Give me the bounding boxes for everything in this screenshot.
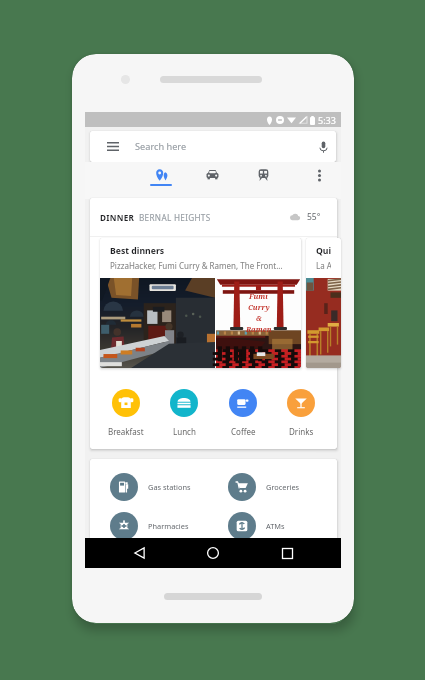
staticText: Groceries [266,482,300,492]
button[interactable]: Pharmacies [90,506,208,545]
staticText: La Alteña, Hot Sauce and Panko [316,260,331,271]
button[interactable]: ATMs [208,506,326,545]
staticText: BERNAL HEIGHTS [139,212,211,223]
staticText: Fumi [249,291,268,301]
staticText: Breakfast [108,426,144,437]
button[interactable]: Back [119,538,159,568]
button[interactable]: Drinks [273,369,329,449]
staticText: Quick lunch spots [316,245,331,257]
button[interactable]: Voice search [310,131,336,162]
button[interactable]: Coffee [215,369,271,449]
button[interactable]: More options [304,162,334,199]
staticText: 55° [307,211,321,223]
button[interactable]: Driving [187,162,237,199]
staticText: Gas stations [148,482,191,492]
staticText: Pharmacies [148,521,189,531]
button[interactable]: Groceries [208,467,326,506]
staticText: 5:33 [318,114,336,126]
staticText: Coffee [231,426,256,437]
staticText: & [256,313,262,323]
button[interactable]: Best dinners [100,238,301,368]
staticText: Ramen [246,324,272,334]
button[interactable]: Breakfast [98,369,154,449]
button[interactable]: Recents [267,538,307,568]
button[interactable]: Explore [136,162,186,199]
staticText: Drinks [289,426,314,437]
staticText: ATMs [266,521,285,531]
staticText: DINNER [100,212,135,223]
button[interactable]: Quick lunch spots [306,238,341,368]
staticText: PizzaHacker, Fumi Curry & Ramen, The Fro… [110,260,283,271]
button[interactable]: Home [193,538,233,568]
button[interactable]: Transit [238,162,288,199]
button[interactable]: Menu [98,131,127,162]
button[interactable]: DINNER [90,198,337,236]
staticText: Curry [248,302,270,312]
staticText: Best dinners [110,245,165,257]
button[interactable]: Menu [90,131,336,162]
button[interactable]: Gas stations [90,467,208,506]
button[interactable]: Lunch [156,369,212,449]
staticText: Search here [135,140,187,153]
staticText: Lunch [173,426,196,437]
